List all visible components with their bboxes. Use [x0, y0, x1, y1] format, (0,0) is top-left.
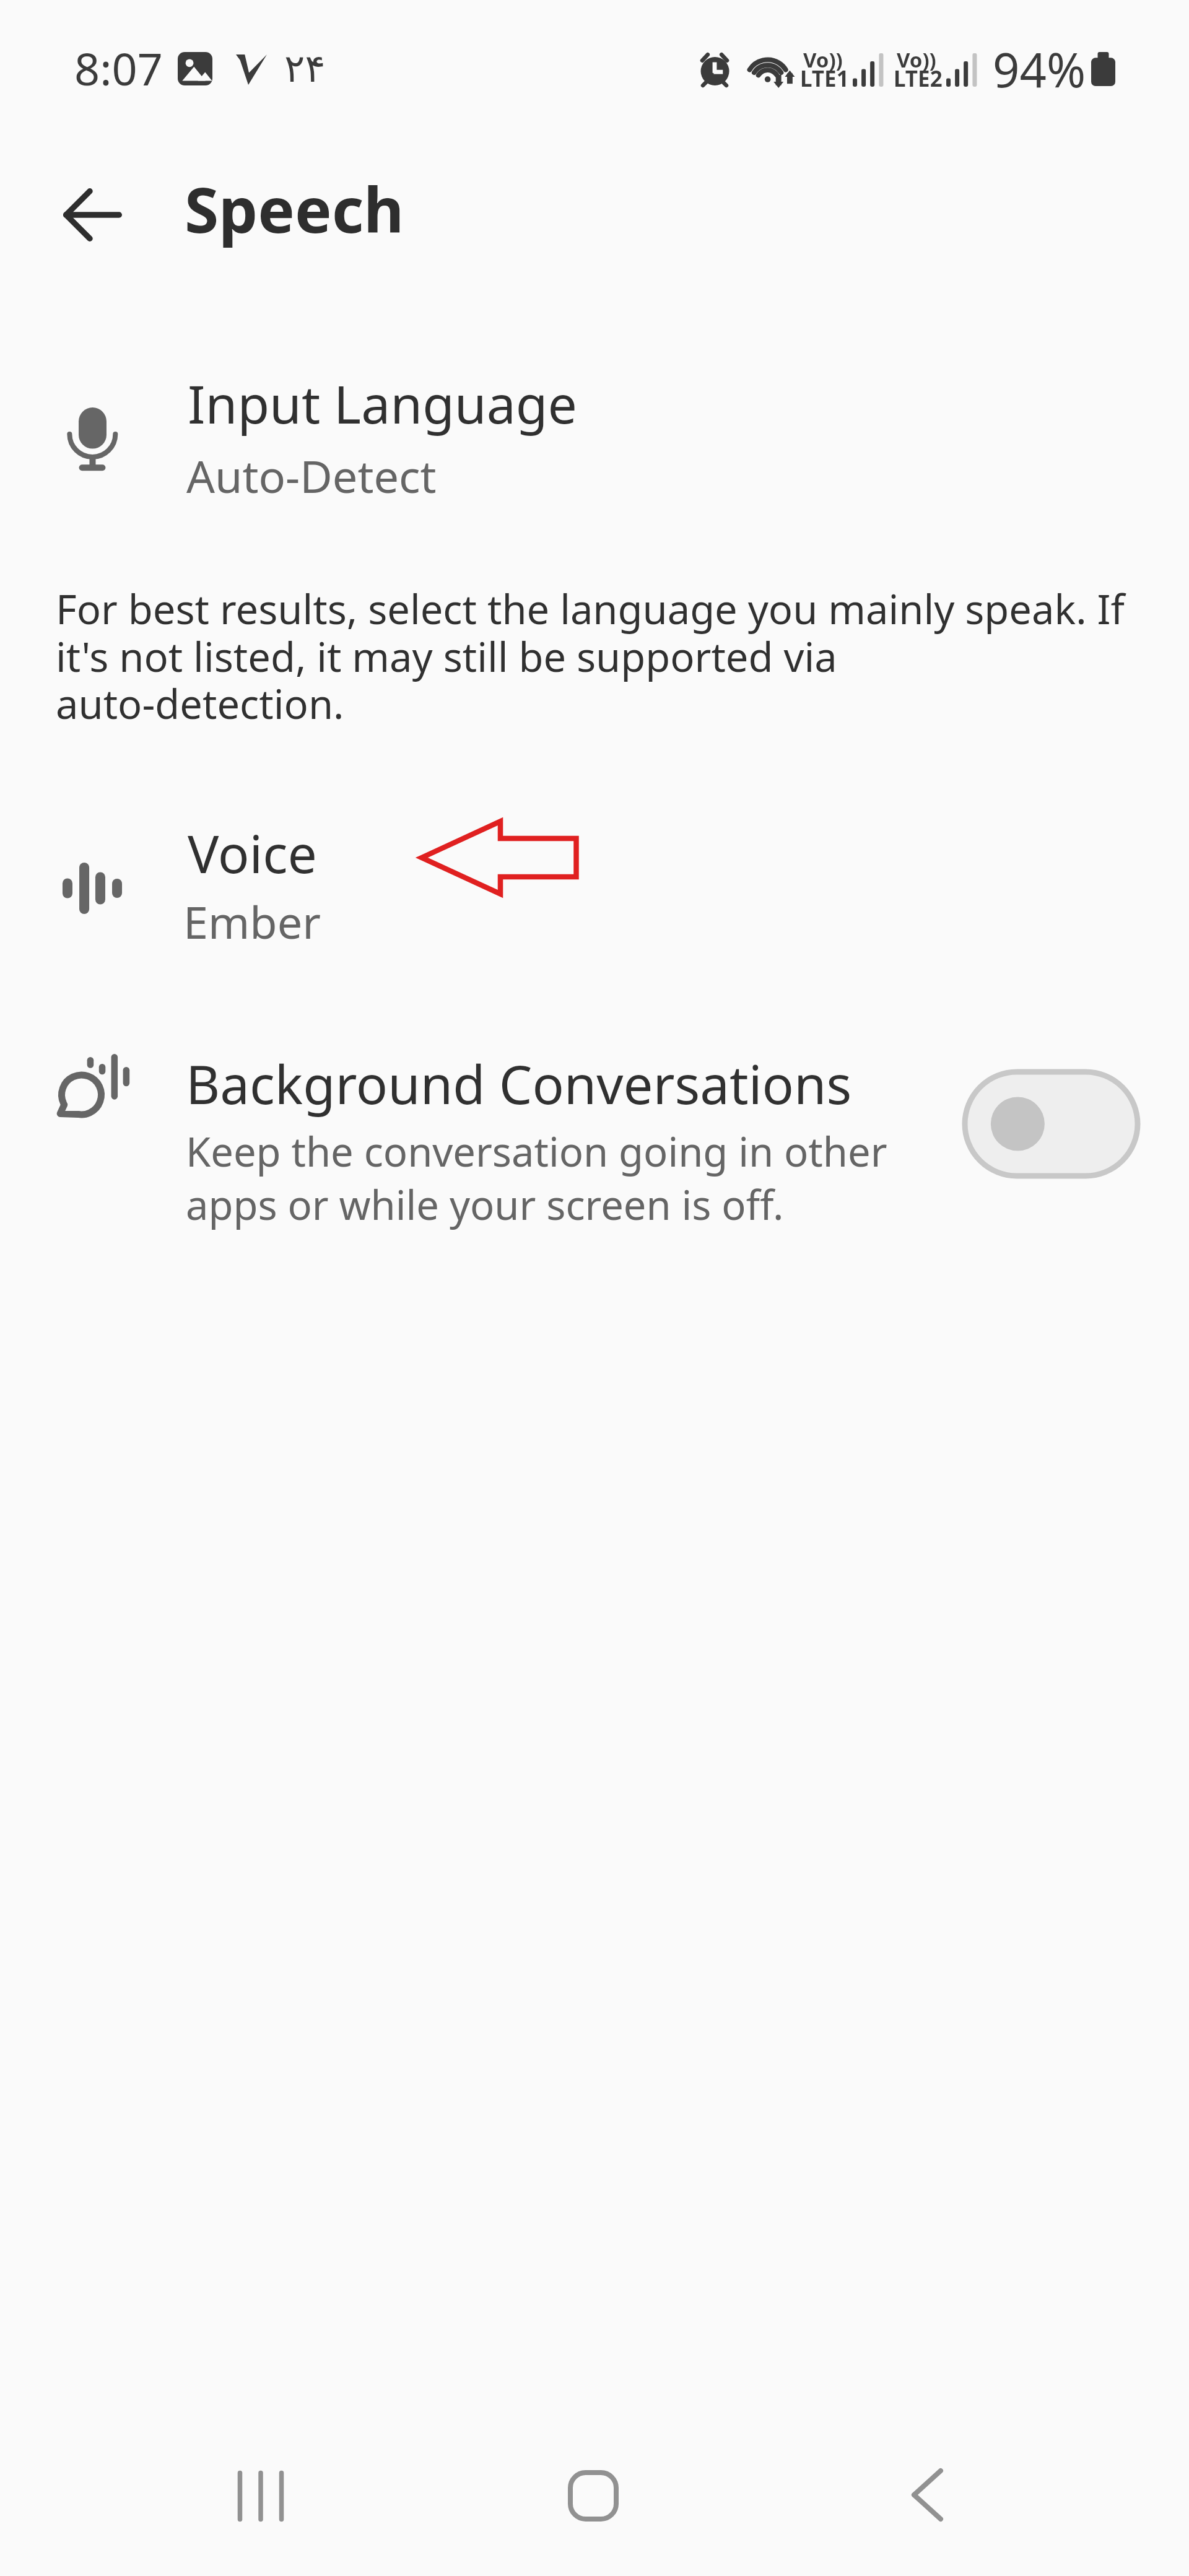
staticText: For best results, select the language yo… — [56, 581, 1126, 731]
staticText: LTE2 — [894, 64, 943, 94]
button[interactable]: Recents — [193, 2440, 329, 2552]
button[interactable]: Home — [525, 2440, 661, 2551]
staticText: Vo)) — [897, 46, 936, 74]
button[interactable]: Back — [859, 2439, 995, 2551]
staticText: ۲۴ — [284, 46, 326, 90]
staticText: 94% — [993, 37, 1086, 102]
staticText: LTE1 — [800, 64, 849, 94]
staticText: Auto-Detect — [186, 445, 437, 506]
staticText: 8:07 — [74, 38, 163, 98]
staticText: Vo)) — [803, 46, 843, 74]
staticText: Speech — [185, 167, 404, 251]
button[interactable]: Background Conversations — [0, 1028, 1189, 1232]
button[interactable]: Voice — [0, 799, 1189, 954]
staticText: Background Conversations — [186, 1048, 852, 1120]
staticText: Voice — [188, 817, 317, 888]
button[interactable]: Background Conversations toggle — [965, 1072, 1138, 1176]
staticText: Input Language — [188, 368, 577, 438]
staticText: Keep the conversation going in other app… — [186, 1124, 917, 1232]
button[interactable]: Input Language — [0, 347, 1189, 508]
staticText: Ember — [183, 891, 321, 952]
button[interactable]: Back — [42, 180, 141, 250]
